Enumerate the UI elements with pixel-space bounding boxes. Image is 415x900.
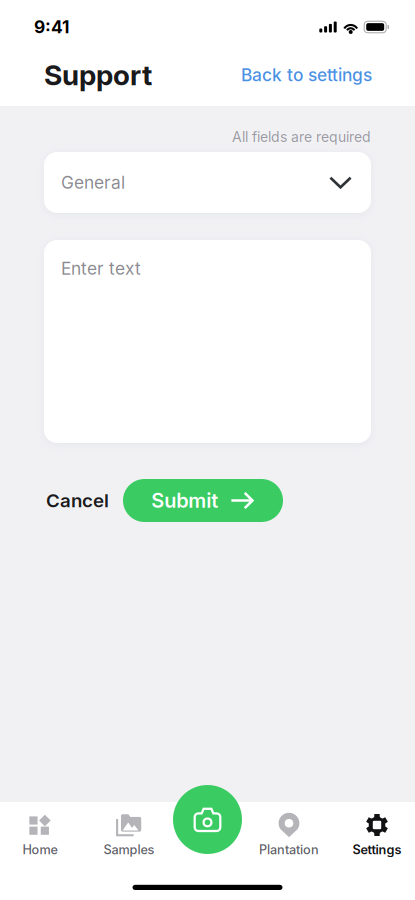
staticText: Plantation xyxy=(259,842,319,857)
staticText: 9:41 xyxy=(34,16,69,37)
staticText: Cancel xyxy=(46,489,109,512)
staticText: Settings xyxy=(352,842,401,857)
staticText: Support xyxy=(44,58,152,92)
button[interactable]: Samples xyxy=(103,812,154,864)
staticText: Samples xyxy=(103,842,154,857)
button[interactable]: Back to settings xyxy=(241,54,372,95)
button[interactable]: Submit xyxy=(123,479,283,522)
staticText: Enter text xyxy=(61,258,141,279)
button[interactable]: Enter text xyxy=(44,240,371,443)
button[interactable]: General xyxy=(44,152,371,213)
staticText: Back to settings xyxy=(241,64,372,85)
staticText: General xyxy=(61,172,125,193)
staticText: All fields are required xyxy=(232,128,371,145)
button[interactable]: Plantation xyxy=(259,812,319,864)
button[interactable]: Settings xyxy=(352,812,401,864)
button[interactable]: Take photo xyxy=(173,785,242,854)
staticText: Home xyxy=(22,842,57,857)
button[interactable]: Home xyxy=(22,812,57,864)
button[interactable]: Cancel xyxy=(44,479,111,521)
staticText: Submit xyxy=(151,488,218,513)
